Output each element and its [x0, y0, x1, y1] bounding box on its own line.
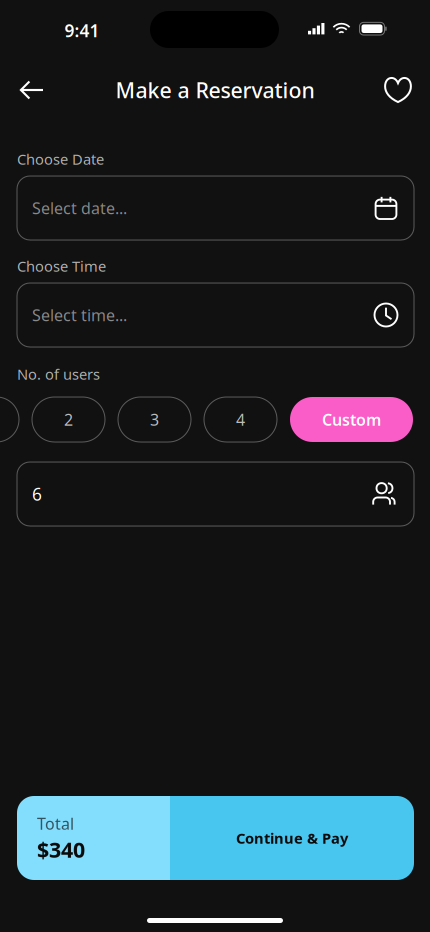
- button[interactable]: 2: [32, 397, 105, 442]
- button[interactable]: 4: [204, 397, 277, 442]
- staticText: 3: [150, 409, 159, 430]
- button[interactable]: 6: [17, 462, 414, 526]
- staticText: $340: [37, 835, 85, 863]
- button[interactable]: 1: [0, 397, 19, 442]
- button[interactable]: Select time...: [17, 283, 414, 347]
- staticText: Choose Date: [17, 149, 104, 169]
- staticText: 6: [32, 482, 42, 505]
- button[interactable]: Select date...: [17, 176, 414, 240]
- button[interactable]: Continue & Pay: [170, 796, 414, 880]
- staticText: Total: [37, 813, 74, 834]
- staticText: Make a Reservation: [115, 76, 314, 104]
- button[interactable]: Back: [9, 68, 55, 112]
- staticText: Custom: [322, 409, 381, 430]
- staticText: 9:41: [64, 19, 99, 42]
- staticText: 4: [236, 409, 245, 430]
- button[interactable]: Add to favourites: [376, 68, 420, 112]
- button[interactable]: Custom: [290, 397, 413, 442]
- staticText: 2: [64, 409, 73, 430]
- staticText: Continue & Pay: [236, 828, 348, 848]
- staticText: Select date...: [32, 197, 127, 219]
- staticText: No. of users: [17, 364, 100, 384]
- staticText: Select time...: [32, 304, 127, 326]
- staticText: Choose Time: [17, 256, 106, 276]
- button[interactable]: 3: [118, 397, 191, 442]
